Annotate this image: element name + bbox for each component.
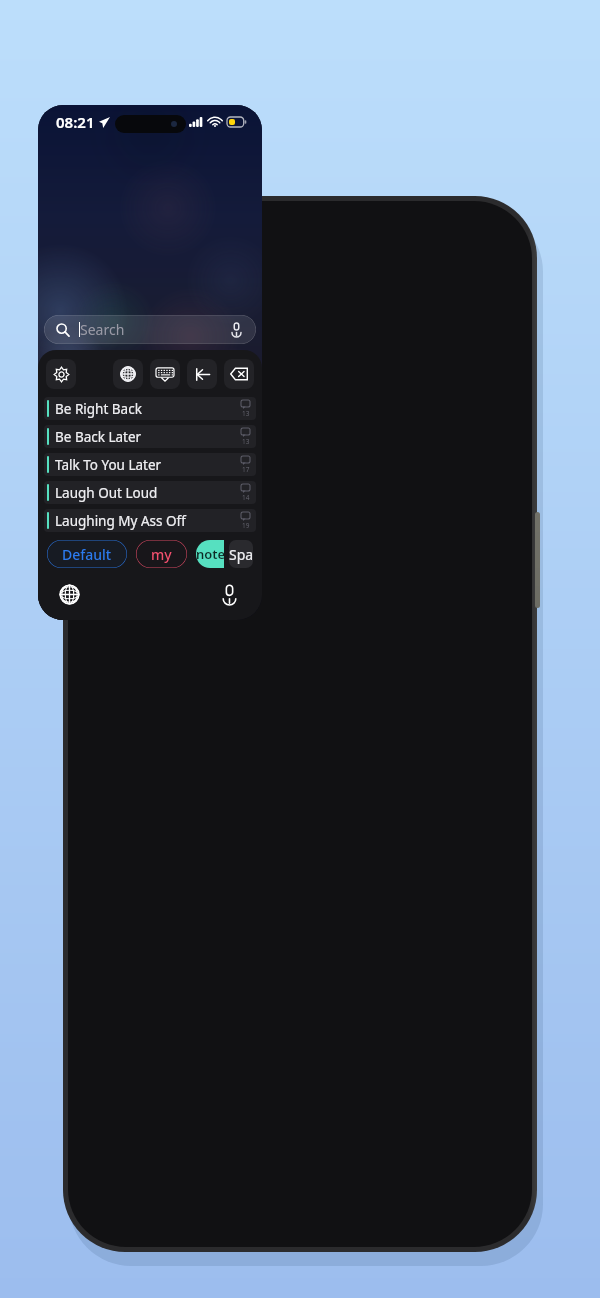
staticText: 13 — [242, 409, 250, 418]
staticText: Default — [62, 545, 112, 564]
staticText: Space — [229, 545, 253, 564]
button[interactable]: Search — [44, 315, 256, 344]
staticText: 19 — [242, 521, 250, 530]
button[interactable]: Switch language — [52, 577, 86, 611]
button[interactable]: my — [136, 540, 187, 568]
staticText: my — [151, 545, 172, 564]
button[interactable]: note — [196, 540, 224, 568]
staticText: note — [196, 545, 224, 563]
staticText: Be Right Back — [55, 400, 142, 418]
button[interactable]: Move cursor left — [187, 359, 217, 389]
staticText: Talk To You Later — [55, 456, 162, 474]
button[interactable]: Settings — [46, 359, 76, 389]
staticText: Be Back Later — [55, 428, 142, 446]
button[interactable]: Laugh Out Loud — [44, 481, 256, 504]
staticText: 14 — [242, 493, 250, 502]
button[interactable]: Space — [229, 540, 253, 568]
button[interactable]: Be Right Back — [44, 397, 256, 420]
button[interactable]: Voice input — [212, 577, 246, 611]
button[interactable]: Laughing My Ass Off — [44, 509, 256, 532]
staticText: Laugh Out Loud — [55, 484, 158, 502]
button[interactable]: Language — [113, 359, 143, 389]
button[interactable]: Backspace — [224, 359, 254, 389]
button[interactable]: Keyboard — [150, 359, 180, 389]
staticText: 13 — [242, 437, 250, 446]
staticText: Laughing My Ass Off — [55, 512, 186, 530]
staticText: 17 — [242, 465, 250, 474]
staticText: 08:21 — [56, 112, 95, 132]
button[interactable]: Talk To You Later — [44, 453, 256, 476]
button[interactable]: Default — [47, 540, 127, 568]
staticText: Search — [80, 320, 125, 339]
button[interactable]: Be Back Later — [44, 425, 256, 448]
